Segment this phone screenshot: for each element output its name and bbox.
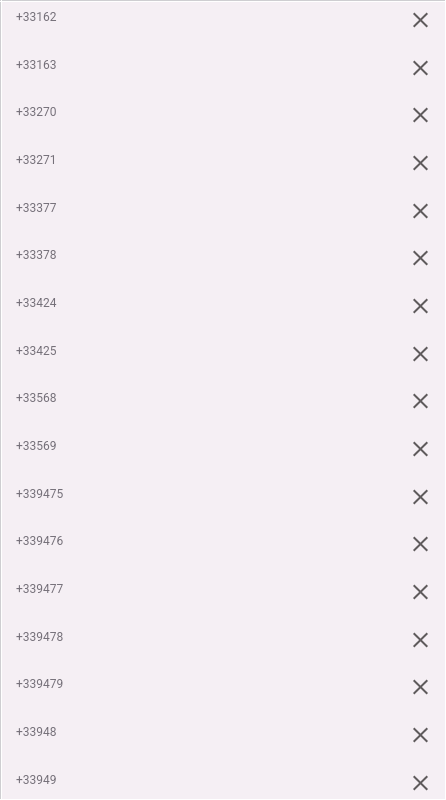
staticText: +33162 — [16, 10, 400, 24]
staticText: +339478 — [16, 630, 400, 644]
button[interactable]: +339478 — [0, 616, 446, 664]
button[interactable]: Remove +339476 — [400, 524, 440, 564]
button[interactable]: Remove +339479 — [400, 667, 440, 707]
button[interactable]: +33424 — [0, 282, 446, 330]
staticText: +33949 — [16, 773, 400, 787]
button[interactable]: Remove +33378 — [400, 238, 440, 278]
button[interactable]: Remove +339478 — [400, 620, 440, 660]
button[interactable]: Remove +33948 — [400, 715, 440, 755]
button[interactable]: +339475 — [0, 473, 446, 521]
staticText: +33270 — [16, 105, 400, 119]
button[interactable]: +33568 — [0, 377, 446, 425]
button[interactable]: Remove +339477 — [400, 572, 440, 612]
staticText: +33568 — [16, 391, 400, 405]
staticText: +33569 — [16, 439, 400, 453]
button[interactable]: +33949 — [0, 759, 446, 800]
button[interactable]: +33948 — [0, 711, 446, 759]
staticText: +33948 — [16, 725, 400, 739]
button[interactable]: Remove +33377 — [400, 191, 440, 231]
staticText: +339477 — [16, 582, 400, 596]
button[interactable]: Remove +339475 — [400, 477, 440, 517]
button[interactable]: +33271 — [0, 139, 446, 187]
button[interactable]: Remove +33424 — [400, 286, 440, 326]
button[interactable]: +33378 — [0, 234, 446, 282]
button[interactable]: +33163 — [0, 44, 446, 92]
button[interactable]: +339477 — [0, 568, 446, 616]
staticText: +33163 — [16, 58, 400, 72]
button[interactable]: +33162 — [0, 0, 446, 44]
staticText: +33425 — [16, 344, 400, 358]
staticText: +33378 — [16, 248, 400, 262]
staticText: +33424 — [16, 296, 400, 310]
button[interactable]: Remove +33569 — [400, 429, 440, 469]
button[interactable]: Remove +33162 — [400, 0, 440, 40]
button[interactable]: +339479 — [0, 663, 446, 711]
staticText: +339475 — [16, 487, 400, 501]
button[interactable]: Remove +33271 — [400, 143, 440, 183]
button[interactable]: +33425 — [0, 330, 446, 378]
staticText: +33377 — [16, 201, 400, 215]
staticText: +339476 — [16, 534, 400, 548]
button[interactable]: Remove +33270 — [400, 95, 440, 135]
button[interactable]: +33377 — [0, 187, 446, 235]
button[interactable]: +33569 — [0, 425, 446, 473]
staticText: +33271 — [16, 153, 400, 167]
button[interactable]: Remove +33568 — [400, 381, 440, 421]
button[interactable]: Remove +33949 — [400, 763, 440, 800]
button[interactable]: Remove +33425 — [400, 334, 440, 374]
button[interactable]: +33270 — [0, 91, 446, 139]
button[interactable]: Remove +33163 — [400, 48, 440, 88]
button[interactable]: +339476 — [0, 520, 446, 568]
staticText: +339479 — [16, 677, 400, 691]
